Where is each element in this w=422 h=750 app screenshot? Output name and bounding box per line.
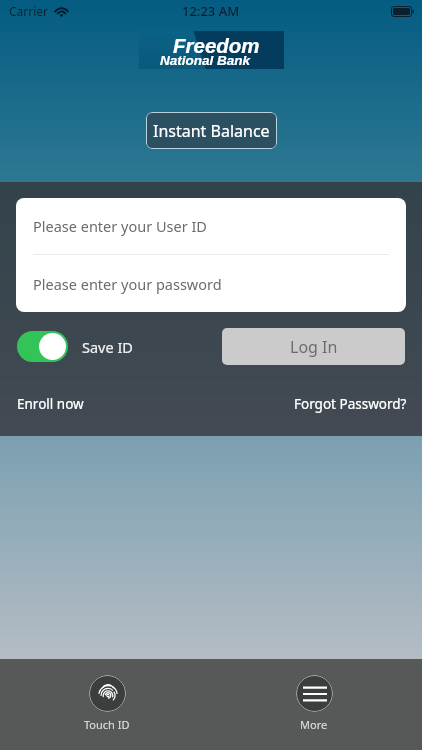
button[interactable]: More [264,659,364,750]
staticText: Touch ID [84,717,130,732]
staticText: Please enter your User ID [33,216,207,236]
button[interactable]: Enroll now [9,387,92,421]
staticText: Freedom [173,34,260,57]
staticText: Save ID [82,337,133,357]
button[interactable]: Touch ID [57,659,157,750]
staticText: National Bank [160,53,251,68]
button[interactable]: Instant Balance [146,112,277,149]
staticText: Instant Balance [153,120,270,142]
staticText: Please enter your password [33,274,222,294]
button[interactable]: Please enter your password [16,255,406,312]
button[interactable]: Log In [222,328,405,365]
staticText: Log In [290,336,338,358]
staticText: Forgot Password? [294,395,407,413]
staticText: More [300,717,328,732]
button[interactable]: Save ID toggle [17,331,68,362]
staticText: Enroll now [17,395,84,413]
staticText: Carrier [9,3,49,19]
button[interactable]: Forgot Password? [286,387,415,421]
button[interactable]: Please enter your User ID [16,198,406,254]
staticText: 12:23 AM [182,2,240,20]
